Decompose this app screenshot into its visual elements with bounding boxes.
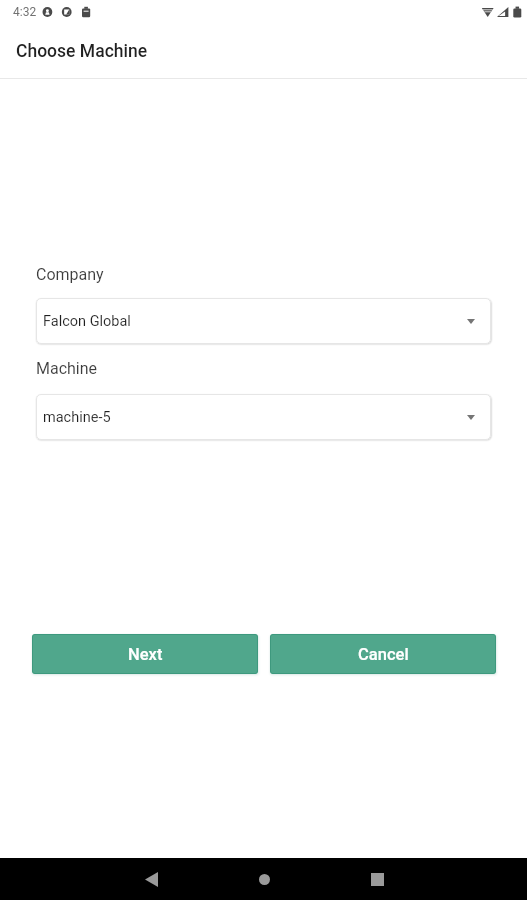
button[interactable]: Falcon Global <box>36 298 491 344</box>
staticText: Falcon Global <box>43 313 131 330</box>
staticText: Choose Machine <box>16 41 148 62</box>
staticText: Cancel <box>358 645 409 664</box>
button[interactable]: Home <box>226 858 302 900</box>
staticText: Company <box>36 265 104 284</box>
staticText: 4:32 <box>13 5 37 19</box>
button[interactable]: machine-5 <box>36 394 491 440</box>
button[interactable]: Recent apps <box>339 858 415 900</box>
staticText: Next <box>128 645 163 664</box>
staticText: machine-5 <box>43 409 111 426</box>
button[interactable]: Next <box>32 634 258 674</box>
button[interactable]: Cancel <box>270 634 496 674</box>
staticText: Machine <box>36 359 98 378</box>
button[interactable]: Back <box>113 858 189 900</box>
